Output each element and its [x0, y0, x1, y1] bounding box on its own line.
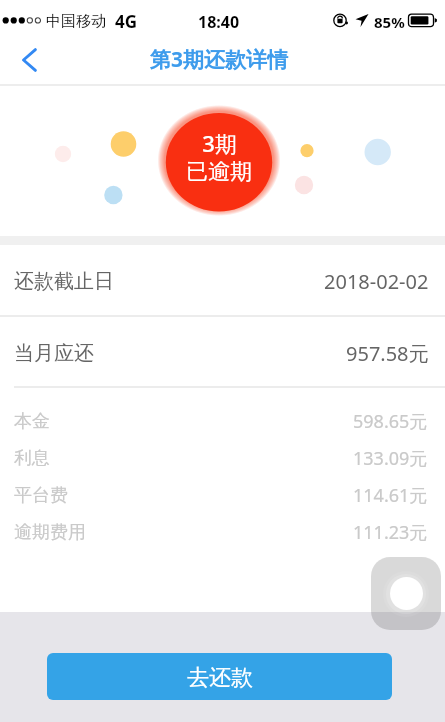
staticText: 本金	[14, 410, 50, 433]
staticText: 平台费	[14, 484, 68, 507]
staticText: 114.61元	[353, 483, 428, 508]
staticText: 去还款	[187, 664, 253, 692]
button[interactable]: 本金	[0, 403, 445, 440]
staticText: 133.09元	[353, 446, 428, 471]
button[interactable]: Back	[0, 36, 60, 84]
staticText: 当月应还	[14, 341, 94, 366]
button[interactable]: 逾期费用	[0, 514, 445, 551]
staticText: 还款截止日	[14, 269, 114, 294]
staticText: 3期	[202, 128, 237, 158]
staticText: 第3期还款详情	[150, 45, 289, 74]
button[interactable]: 利息	[0, 440, 445, 477]
button[interactable]: AssistiveTouch	[371, 557, 441, 630]
staticText: 中国移动	[46, 12, 106, 31]
staticText: 利息	[14, 447, 50, 470]
staticText: 957.58元	[346, 340, 429, 367]
staticText: 111.23元	[353, 520, 428, 545]
staticText: 逾期费用	[14, 521, 86, 544]
staticText: 2018-02-02	[324, 268, 429, 295]
button[interactable]: 还款截止日	[0, 245, 445, 315]
staticText: 已逾期	[186, 158, 252, 186]
staticText: 598.65元	[353, 409, 428, 434]
staticText: 18:40	[198, 11, 240, 33]
button[interactable]: 当月应还	[0, 317, 445, 386]
staticText: 4G	[115, 10, 138, 33]
button[interactable]: 去还款	[47, 653, 392, 700]
button[interactable]: 平台费	[0, 477, 445, 514]
staticText: 85%	[374, 12, 405, 32]
